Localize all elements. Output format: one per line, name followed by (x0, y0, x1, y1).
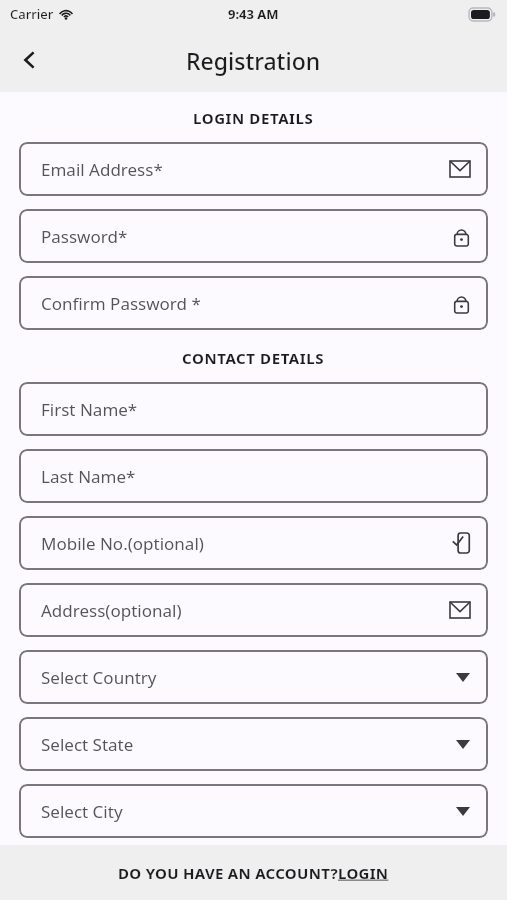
staticText: Registration (186, 45, 321, 76)
button[interactable]: Confirm Password * (19, 276, 488, 330)
button[interactable]: First Name* (19, 382, 488, 436)
staticText: Select City (41, 800, 456, 823)
staticText: Carrier (10, 5, 54, 23)
staticText: Confirm Password * (41, 292, 453, 315)
staticText: LOGIN DETAILS (193, 108, 314, 128)
button[interactable]: Password* (19, 209, 488, 263)
button[interactable]: LOGIN (338, 863, 389, 883)
button[interactable]: Last Name* (19, 449, 488, 503)
button[interactable]: Mobile No.(optional) (19, 516, 488, 570)
staticText: 9:43 AM (228, 5, 279, 23)
staticText: Password* (41, 225, 453, 248)
staticText: Mobile No.(optional) (41, 532, 452, 555)
button[interactable]: Email Address* (19, 142, 488, 196)
button[interactable]: Select Country (19, 650, 488, 704)
staticText: Last Name* (41, 465, 470, 488)
staticText: Select State (41, 733, 456, 756)
staticText: LOGIN (338, 863, 389, 883)
staticText: Select Country (41, 666, 456, 689)
staticText: Address(optional) (41, 599, 450, 622)
staticText: Email Address* (41, 158, 450, 181)
staticText: CONTACT DETAILS (182, 348, 325, 368)
staticText: DO YOU HAVE AN ACCOUNT? (118, 863, 338, 883)
button[interactable]: Select City (19, 784, 488, 838)
button[interactable]: Select State (19, 717, 488, 771)
button[interactable]: Back (6, 36, 54, 84)
button[interactable]: Address(optional) (19, 583, 488, 637)
staticText: First Name* (41, 398, 470, 421)
